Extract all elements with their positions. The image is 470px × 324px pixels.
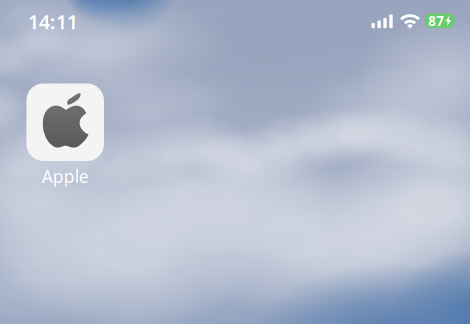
button[interactable]: Apple <box>26 83 104 189</box>
staticText: 14:11 <box>28 8 78 35</box>
staticText: 87 <box>428 12 444 30</box>
staticText: Apple <box>42 165 89 188</box>
